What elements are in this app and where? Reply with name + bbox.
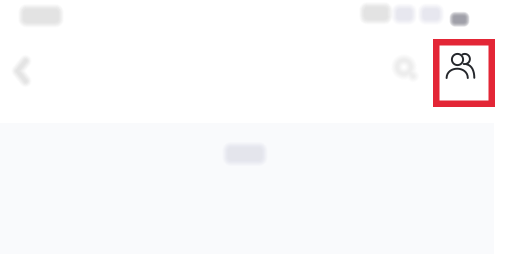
button[interactable]: Search [384,47,428,91]
button[interactable]: Participants [433,39,495,107]
button[interactable]: Back [0,49,44,93]
